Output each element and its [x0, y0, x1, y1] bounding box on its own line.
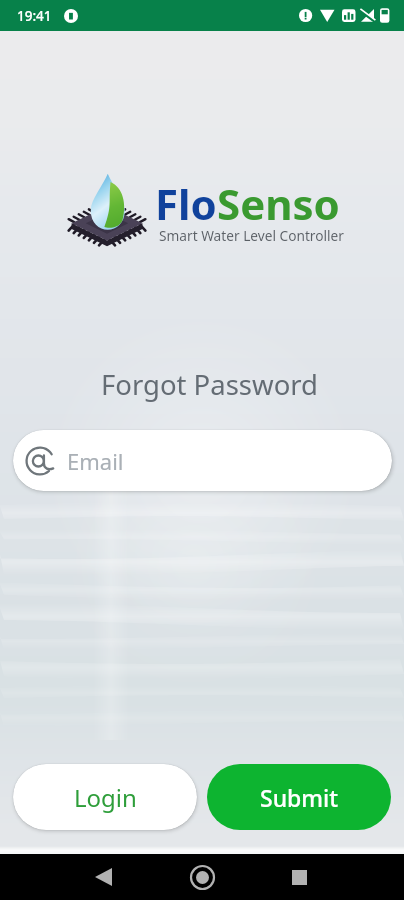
button[interactable]: Recent apps [279, 857, 319, 897]
staticText: Smart Water Level Controller [159, 226, 344, 245]
staticText: Senso [217, 175, 340, 232]
staticText: Flo [155, 175, 217, 232]
staticText: Submit [260, 782, 339, 813]
staticText: Email [67, 446, 124, 476]
button[interactable]: Submit [207, 764, 391, 830]
button[interactable]: Home [182, 857, 222, 897]
button[interactable]: Back [83, 857, 123, 897]
staticText: Login [74, 781, 137, 814]
staticText: Forgot Password [101, 366, 319, 403]
button[interactable]: Login [13, 764, 197, 830]
staticText: 19:41 [17, 7, 52, 25]
button[interactable]: Email [13, 430, 392, 491]
